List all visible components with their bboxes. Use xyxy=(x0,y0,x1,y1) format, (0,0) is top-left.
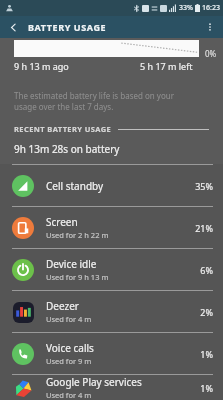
staticText: 2% xyxy=(200,306,213,318)
button[interactable]: Deezer xyxy=(0,291,223,332)
staticText: Used for 4 m xyxy=(46,314,92,324)
staticText: 1% xyxy=(200,348,213,360)
staticText: 9h 13m 28s on battery xyxy=(14,142,120,156)
button[interactable]: Device idle xyxy=(0,249,223,290)
staticText: BATTERY USAGE xyxy=(28,21,107,33)
staticText: 35% xyxy=(195,180,213,192)
staticText: Used for 2 h 22 m xyxy=(46,230,109,240)
staticText: 33% xyxy=(179,3,193,13)
button[interactable]: Screen xyxy=(0,207,223,248)
staticText: Google Play services xyxy=(46,375,142,389)
button[interactable]: Google Play services xyxy=(0,375,223,400)
staticText: The estimated battery life is based on y… xyxy=(14,90,193,112)
staticText: Deezer xyxy=(46,299,79,313)
button[interactable]: Cell standby xyxy=(0,165,223,206)
button[interactable]: Back xyxy=(4,18,22,36)
staticText: 9 h 13 m ago xyxy=(14,60,69,72)
staticText: Used for 9 m xyxy=(46,356,92,366)
staticText: Used for 4 m xyxy=(46,390,92,400)
staticText: Voice calls xyxy=(46,341,94,355)
staticText: 1% xyxy=(200,382,213,394)
staticText: Screen xyxy=(46,215,78,229)
staticText: Device idle xyxy=(46,257,97,271)
staticText: Cell standby xyxy=(46,179,104,193)
staticText: Used for 9 h 13 m xyxy=(46,272,109,282)
staticText: 6% xyxy=(200,264,213,276)
button[interactable]: More options xyxy=(201,18,219,36)
staticText: 5 h 17 m left xyxy=(140,60,193,72)
staticText: 0% xyxy=(205,48,217,59)
staticText: 16:23 xyxy=(202,3,220,13)
staticText: 21% xyxy=(195,222,213,234)
button[interactable]: Voice calls xyxy=(0,333,223,374)
staticText: RECENT BATTERY USAGE xyxy=(14,124,112,134)
